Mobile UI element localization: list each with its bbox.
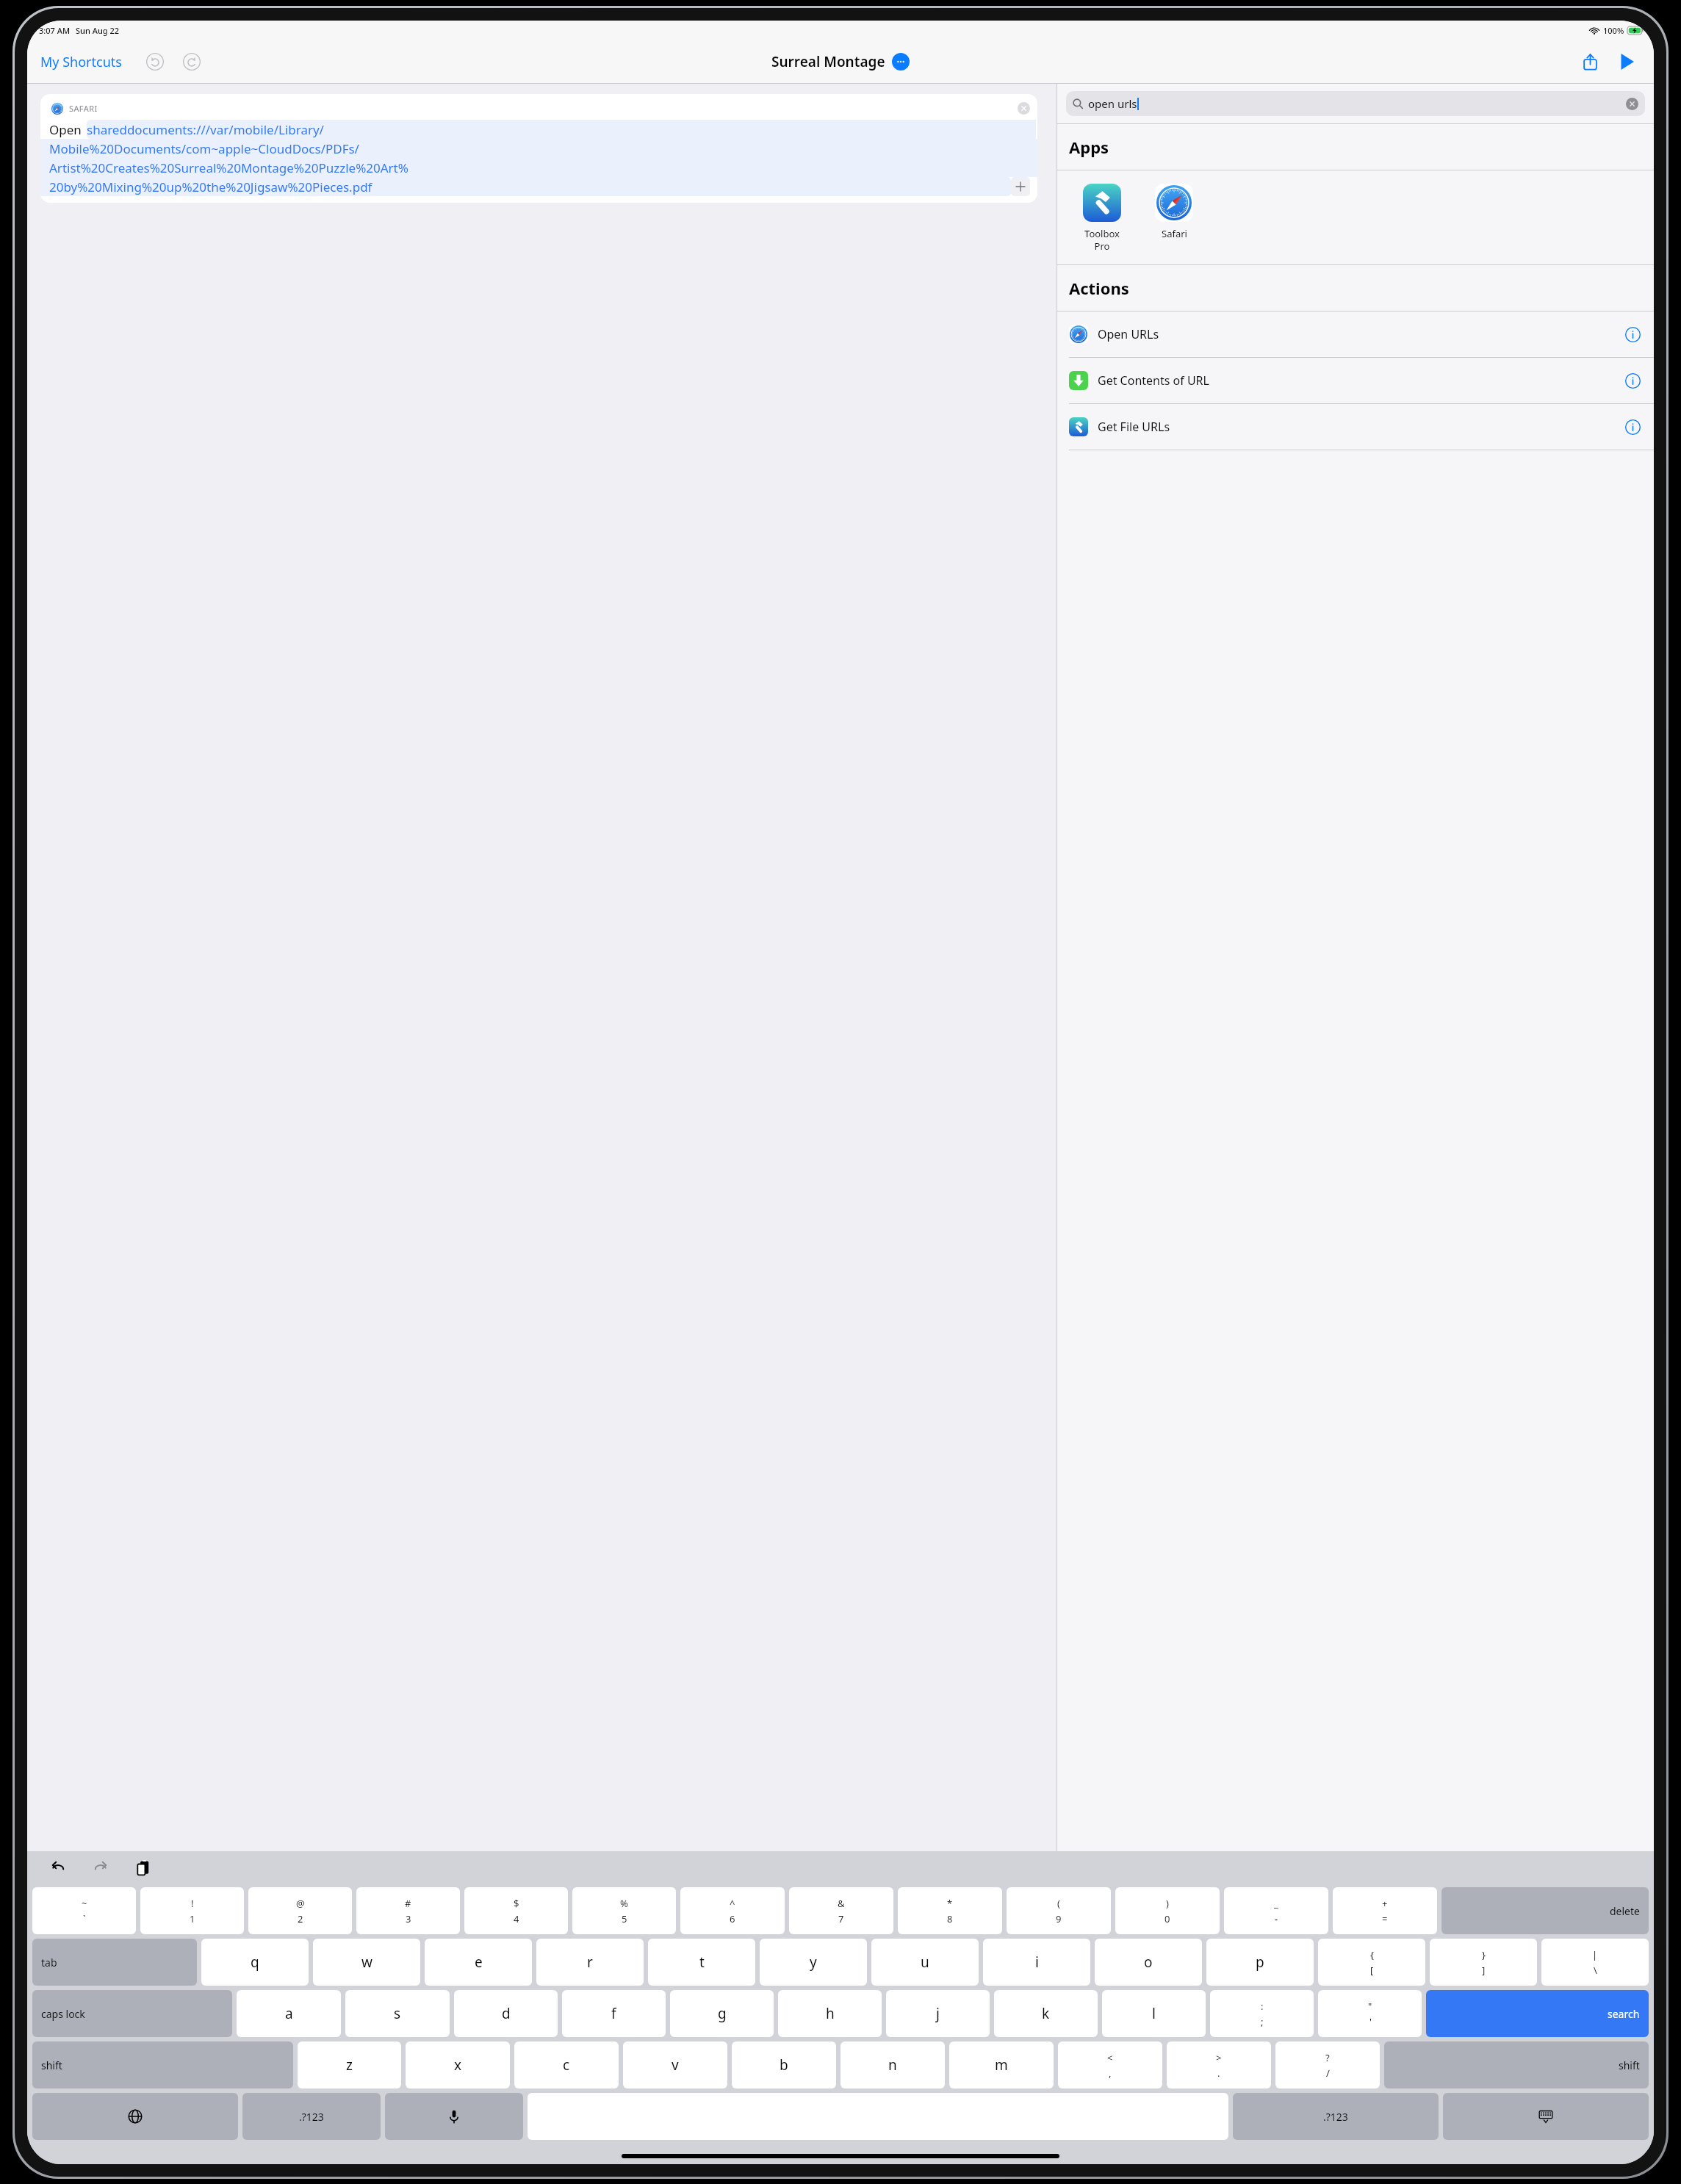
button[interactable]: { bbox=[1318, 1939, 1425, 1986]
button[interactable]: Open URLs bbox=[1057, 311, 1654, 357]
button[interactable]: l bbox=[1102, 1990, 1206, 2037]
button[interactable]: j bbox=[886, 1990, 990, 2037]
button[interactable]: ? bbox=[1275, 2041, 1380, 2089]
button[interactable]: Remove action bbox=[1018, 102, 1030, 115]
button[interactable]: x bbox=[406, 2041, 510, 2089]
button[interactable]: o bbox=[1095, 1939, 1202, 1986]
button[interactable]: > bbox=[1167, 2041, 1271, 2089]
button[interactable]: } bbox=[1430, 1939, 1537, 1986]
button[interactable]: caps lock bbox=[32, 1990, 232, 2037]
staticText: j bbox=[936, 2004, 940, 2023]
button[interactable]: : bbox=[1210, 1990, 1314, 2037]
button[interactable]: % bbox=[572, 1887, 676, 1934]
staticText: . bbox=[1217, 2066, 1220, 2080]
button[interactable]: f bbox=[562, 1990, 666, 2037]
button[interactable]: ( bbox=[1007, 1887, 1111, 1934]
button[interactable]: Undo bbox=[45, 1855, 71, 1881]
button[interactable]: @ bbox=[248, 1887, 352, 1934]
button[interactable]: i bbox=[983, 1939, 1090, 1986]
button[interactable]: Share bbox=[1576, 48, 1604, 76]
button[interactable]: n bbox=[840, 2041, 945, 2089]
button[interactable]: My Shortcuts bbox=[39, 50, 123, 74]
staticText: ^ bbox=[730, 1897, 735, 1910]
staticText: 6 bbox=[730, 1912, 735, 1925]
button[interactable]: About Open URLs bbox=[1623, 325, 1642, 344]
staticText: h bbox=[826, 2004, 835, 2023]
button[interactable]: w bbox=[313, 1939, 420, 1986]
button[interactable]: Get File URLs bbox=[1057, 404, 1654, 450]
button[interactable]: ! bbox=[140, 1887, 244, 1934]
button[interactable]: $ bbox=[464, 1887, 568, 1934]
button[interactable]: u bbox=[871, 1939, 979, 1986]
staticText: " bbox=[1368, 2000, 1372, 2013]
staticText: Artist%20Creates%20Surreal%20Montage%20P… bbox=[49, 159, 408, 176]
button[interactable]: z bbox=[298, 2041, 401, 2089]
button[interactable]: y bbox=[760, 1939, 867, 1986]
staticText: 8 bbox=[947, 1912, 953, 1925]
button[interactable]: v bbox=[623, 2041, 727, 2089]
button[interactable]: h bbox=[778, 1990, 882, 2037]
button[interactable]: ~ bbox=[32, 1887, 136, 1934]
button[interactable]: delete bbox=[1441, 1887, 1649, 1934]
staticText: open urls bbox=[1088, 96, 1137, 111]
button[interactable]: d bbox=[454, 1990, 558, 2037]
button[interactable]: Dictation bbox=[385, 2093, 523, 2140]
staticText: Toolbox Pro bbox=[1084, 227, 1120, 253]
button[interactable]: ) bbox=[1115, 1887, 1220, 1934]
button[interactable]: a bbox=[237, 1990, 341, 2037]
button[interactable]: q bbox=[201, 1939, 309, 1986]
button[interactable]: Hide keyboard bbox=[1443, 2093, 1649, 2140]
button[interactable]: Redo bbox=[179, 49, 204, 74]
button[interactable]: t bbox=[648, 1939, 755, 1986]
button[interactable]: _ bbox=[1224, 1887, 1328, 1934]
button[interactable]: shift bbox=[1384, 2041, 1649, 2089]
button[interactable]: .?123 bbox=[1233, 2093, 1439, 2140]
button[interactable]: # bbox=[356, 1887, 460, 1934]
button[interactable]: ^ bbox=[680, 1887, 785, 1934]
button[interactable]: + bbox=[1333, 1887, 1437, 1934]
button[interactable]: s bbox=[345, 1990, 450, 2037]
button[interactable]: < bbox=[1058, 2041, 1162, 2089]
button[interactable]: search bbox=[1426, 1990, 1649, 2037]
button[interactable]: SAFARI bbox=[40, 94, 1037, 203]
button[interactable]: About Get File URLs bbox=[1623, 417, 1642, 436]
button[interactable]: Add variable bbox=[1011, 177, 1030, 196]
staticText: * bbox=[947, 1897, 953, 1910]
button[interactable]: e bbox=[425, 1939, 532, 1986]
staticText: [ bbox=[1370, 1964, 1374, 1977]
button[interactable]: .?123 bbox=[242, 2093, 381, 2140]
button[interactable]: Redo bbox=[87, 1855, 114, 1881]
button[interactable]: shift bbox=[32, 2041, 293, 2089]
button[interactable]: Paste bbox=[130, 1855, 156, 1881]
button[interactable]: Clear search bbox=[1626, 98, 1638, 110]
staticText: a bbox=[285, 2004, 293, 2023]
button[interactable]: open urls bbox=[1066, 91, 1645, 116]
button[interactable]: Run shortcut bbox=[1613, 48, 1641, 76]
button[interactable]: | bbox=[1541, 1939, 1649, 1986]
button[interactable]: " bbox=[1318, 1990, 1422, 2037]
button[interactable]: g bbox=[670, 1990, 774, 2037]
button[interactable]: b bbox=[732, 2041, 836, 2089]
button[interactable]: Safari bbox=[1145, 182, 1203, 242]
button[interactable]: Get Contents of URL bbox=[1057, 358, 1654, 403]
staticText: ] bbox=[1482, 1964, 1486, 1977]
staticText: | bbox=[1592, 1948, 1598, 1961]
button[interactable]: p bbox=[1206, 1939, 1314, 1986]
button[interactable]: c bbox=[514, 2041, 619, 2089]
button[interactable]: Undo bbox=[143, 49, 168, 74]
button[interactable]: * bbox=[898, 1887, 1002, 1934]
button[interactable]: Toolbox Pro bbox=[1073, 182, 1131, 254]
button[interactable]: m bbox=[949, 2041, 1054, 2089]
button[interactable]: r bbox=[536, 1939, 644, 1986]
staticText: ) bbox=[1166, 1897, 1169, 1910]
staticText: 0 bbox=[1165, 1912, 1170, 1925]
staticText: Open bbox=[49, 121, 82, 138]
button[interactable]: About Get Contents of URL bbox=[1623, 371, 1642, 390]
button[interactable]: Shortcut details bbox=[892, 53, 910, 71]
button[interactable]: & bbox=[789, 1887, 893, 1934]
staticText: delete bbox=[1610, 1904, 1640, 1918]
button[interactable]: tab bbox=[32, 1939, 197, 1986]
button[interactable]: Globe bbox=[32, 2093, 238, 2140]
button[interactable]: k bbox=[994, 1990, 1098, 2037]
